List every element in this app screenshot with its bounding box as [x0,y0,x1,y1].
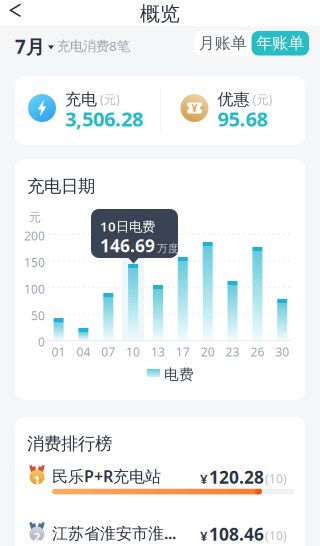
staticText: ¥ [200,527,208,544]
staticText: (元) [100,91,120,107]
staticText: 108.46 [209,522,264,545]
staticText: 年账单 [256,33,304,53]
staticText: 充电日期 [27,175,95,197]
staticText: 120.28 [209,465,264,488]
staticText: 充电 [65,89,97,109]
staticText: 1 [33,472,40,488]
staticText: 20 [201,344,215,360]
staticText: 电费 [164,365,194,383]
staticText: (10) [265,471,287,486]
staticText: 江苏省淮安市淮... [52,522,176,544]
button[interactable]: Back [4,0,28,24]
staticText: 26 [250,344,264,360]
staticText: ¥ [191,101,197,115]
staticText: 200 [24,228,45,244]
staticText: 146.69 [100,234,155,257]
staticText: 30 [275,344,289,360]
staticText: 95.68 [217,105,267,132]
staticText: 元 [29,210,41,225]
button[interactable]: 7月 [15,34,54,59]
staticText: 01 [52,344,66,360]
staticText: 概览 [140,1,180,26]
staticText: (10) [265,528,287,543]
staticText: 0 [38,334,45,350]
staticText: 消费排行榜 [27,433,112,454]
staticText: 月账单 [199,33,247,53]
staticText: (元) [252,91,272,107]
button[interactable]: 2 [27,519,293,546]
staticText: 万度 [157,242,179,255]
staticText: 民乐P+R充电站 [52,465,161,487]
staticText: 2 [33,529,40,545]
staticText: 充电消费8笔 [57,37,130,55]
staticText: 10日电费 [100,217,155,235]
button[interactable]: 月账单 [194,31,251,55]
staticText: 17 [176,344,190,360]
staticText: 7月 [15,34,45,59]
staticText: 10 [126,344,140,360]
staticText: 07 [101,344,115,360]
staticText: 23 [225,344,239,360]
staticText: 150 [24,254,45,270]
staticText: 100 [24,281,45,297]
staticText: 3,506.28 [65,105,143,132]
staticText: 优惠 [217,89,249,109]
button[interactable]: 年账单 [251,31,309,55]
staticText: 04 [76,344,90,360]
staticText: 50 [31,308,45,323]
staticText: 13 [151,344,165,360]
staticText: ¥ [200,470,208,487]
button[interactable]: 1 [27,462,293,502]
